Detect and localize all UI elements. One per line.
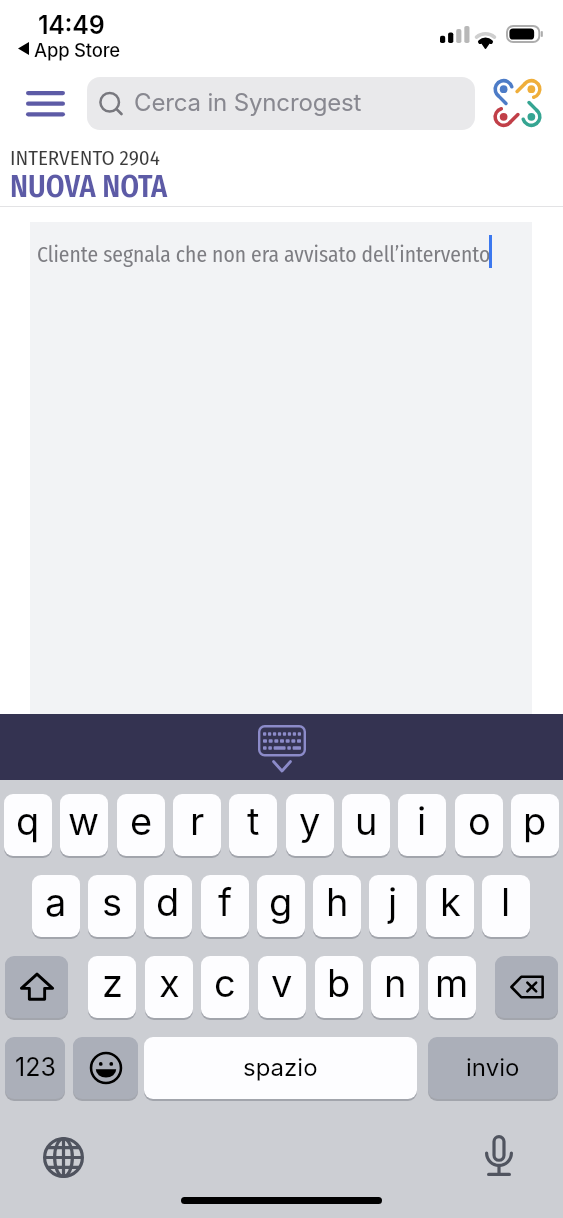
staticText: Cliente segnala che non era avvisato del…	[37, 242, 491, 268]
staticText: n	[384, 960, 407, 1006]
button[interactable]: f	[201, 875, 249, 937]
button[interactable]: i	[398, 794, 446, 856]
button[interactable]: x	[145, 956, 193, 1018]
staticText: m	[435, 960, 469, 1006]
button[interactable]: t	[229, 794, 277, 856]
staticText: d	[156, 879, 180, 925]
staticText: o	[468, 798, 491, 844]
staticText: y	[299, 798, 321, 844]
staticText: l	[501, 879, 511, 925]
staticText: v	[271, 960, 293, 1006]
button[interactable]: Cerca in Syncrogest	[87, 77, 475, 130]
button[interactable]: u	[342, 794, 390, 856]
staticText: h	[326, 879, 349, 925]
button[interactable]: c	[201, 956, 249, 1018]
button[interactable]: Backspace	[495, 956, 558, 1018]
button[interactable]: Shift	[5, 956, 68, 1018]
staticText: INTERVENTO 2904	[10, 145, 160, 170]
staticText: i	[417, 798, 427, 844]
staticText: c	[214, 960, 236, 1006]
button[interactable]: p	[511, 794, 559, 856]
button[interactable]: m	[428, 956, 476, 1018]
staticText: r	[190, 798, 205, 844]
button[interactable]: v	[258, 956, 306, 1018]
button[interactable]: l	[482, 875, 530, 937]
button[interactable]: y	[286, 794, 334, 856]
staticText: s	[102, 879, 123, 925]
staticText: u	[355, 798, 378, 844]
staticText: p	[523, 798, 547, 844]
button[interactable]: Syncrogest	[489, 74, 547, 132]
button[interactable]: Hide keyboard	[250, 718, 314, 778]
staticText: invio	[466, 1053, 520, 1082]
staticText: g	[269, 879, 293, 925]
staticText: f	[218, 879, 233, 925]
button[interactable]: q	[4, 794, 52, 856]
button[interactable]: z	[88, 956, 136, 1018]
staticText: a	[45, 879, 67, 925]
button[interactable]: j	[369, 875, 417, 937]
staticText: NUOVA NOTA	[10, 169, 168, 205]
button[interactable]: g	[257, 875, 305, 937]
button[interactable]: Dictation	[472, 1129, 525, 1182]
button[interactable]: Emoji	[73, 1037, 138, 1099]
staticText: j	[388, 879, 398, 925]
staticText: spazio	[243, 1053, 318, 1082]
staticText: q	[16, 798, 40, 844]
staticText: 14:49	[38, 10, 105, 40]
staticText: k	[440, 879, 461, 925]
button[interactable]: d	[144, 875, 192, 937]
staticText: t	[247, 798, 260, 844]
button[interactable]: invio	[428, 1037, 558, 1099]
staticText: Cerca in Syncrogest	[134, 88, 362, 117]
button[interactable]: Back to App Store	[16, 38, 146, 60]
staticText: App Store	[34, 39, 121, 61]
button[interactable]: k	[426, 875, 474, 937]
button[interactable]: b	[315, 956, 363, 1018]
staticText: z	[102, 960, 123, 1006]
button[interactable]: h	[313, 875, 361, 937]
button[interactable]: Menu	[10, 80, 82, 126]
button[interactable]: w	[60, 794, 108, 856]
button[interactable]: s	[88, 875, 136, 937]
button[interactable]: Next keyboard	[37, 1131, 90, 1184]
staticText: b	[327, 960, 351, 1006]
button[interactable]: 123	[5, 1037, 65, 1099]
staticText: 123	[15, 1052, 56, 1082]
button[interactable]: o	[455, 794, 503, 856]
button[interactable]: spazio	[144, 1037, 417, 1099]
button[interactable]: a	[32, 875, 80, 937]
button[interactable]: n	[371, 956, 419, 1018]
button[interactable]: e	[117, 794, 165, 856]
staticText: e	[130, 798, 153, 844]
staticText: w	[68, 798, 100, 844]
button[interactable]: r	[173, 794, 221, 856]
staticText: x	[159, 960, 180, 1006]
